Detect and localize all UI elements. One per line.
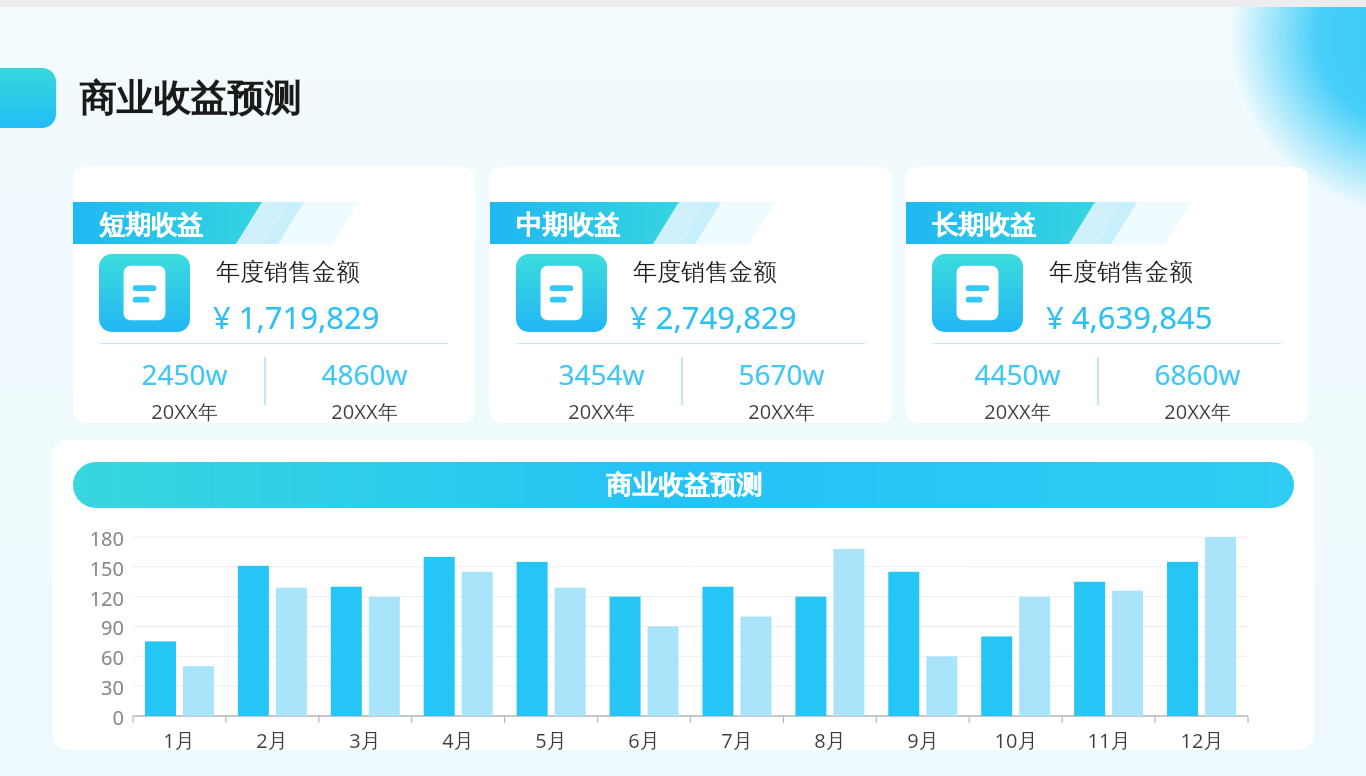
staticText: 0 — [70, 704, 124, 731]
staticText: 30 — [70, 674, 124, 701]
staticText: 商业收益预测 — [79, 75, 301, 122]
staticText: 长期收益 — [932, 209, 1036, 242]
staticText: 年度销售金额 — [216, 257, 360, 287]
staticText: 20XX年 — [280, 398, 449, 423]
staticText: 120 — [70, 585, 124, 612]
staticText: 中期收益 — [516, 209, 620, 242]
staticText: 11月 — [1074, 727, 1144, 750]
staticText: ¥ 2,749,829 — [630, 296, 797, 338]
staticText: 2月 — [237, 727, 307, 750]
staticText: 2450w — [100, 355, 269, 393]
staticText: 20XX年 — [697, 398, 866, 423]
button[interactable]: 中期收益 — [490, 167, 892, 423]
staticText: 10月 — [981, 727, 1051, 750]
staticText: 8月 — [795, 727, 865, 750]
staticText: 5670w — [697, 355, 866, 393]
staticText: 6860w — [1113, 355, 1282, 393]
staticText: 20XX年 — [1113, 398, 1282, 423]
staticText: ¥ 1,719,829 — [213, 296, 380, 338]
staticText: 3月 — [330, 727, 400, 750]
staticText: ¥ 4,639,845 — [1046, 296, 1213, 338]
button[interactable]: 商业收益预测 — [52, 440, 1314, 750]
staticText: 9月 — [888, 727, 958, 750]
other: Annual sales report — [516, 254, 607, 332]
staticText: 7月 — [702, 727, 772, 750]
staticText: 60 — [70, 644, 124, 671]
staticText: 年度销售金额 — [1049, 257, 1193, 287]
other: Annual sales report — [932, 254, 1023, 332]
staticText: 20XX年 — [517, 398, 686, 423]
staticText: 90 — [70, 614, 124, 641]
staticText: 180 — [70, 525, 124, 552]
staticText: 1月 — [144, 727, 214, 750]
staticText: 3454w — [517, 355, 686, 393]
button[interactable]: 长期收益 — [906, 167, 1308, 423]
button[interactable]: 短期收益 — [73, 167, 475, 423]
staticText: 年度销售金额 — [633, 257, 777, 287]
staticText: 20XX年 — [933, 398, 1102, 423]
staticText: 6月 — [609, 727, 679, 750]
staticText: 12月 — [1167, 727, 1237, 750]
other: Annual sales report — [99, 254, 190, 332]
staticText: 20XX年 — [100, 398, 269, 423]
staticText: 短期收益 — [99, 209, 203, 242]
staticText: 4450w — [933, 355, 1102, 393]
staticText: 商业收益预测 — [606, 469, 762, 502]
staticText: 5月 — [516, 727, 586, 750]
staticText: 4860w — [280, 355, 449, 393]
staticText: 150 — [70, 555, 124, 582]
staticText: 4月 — [423, 727, 493, 750]
